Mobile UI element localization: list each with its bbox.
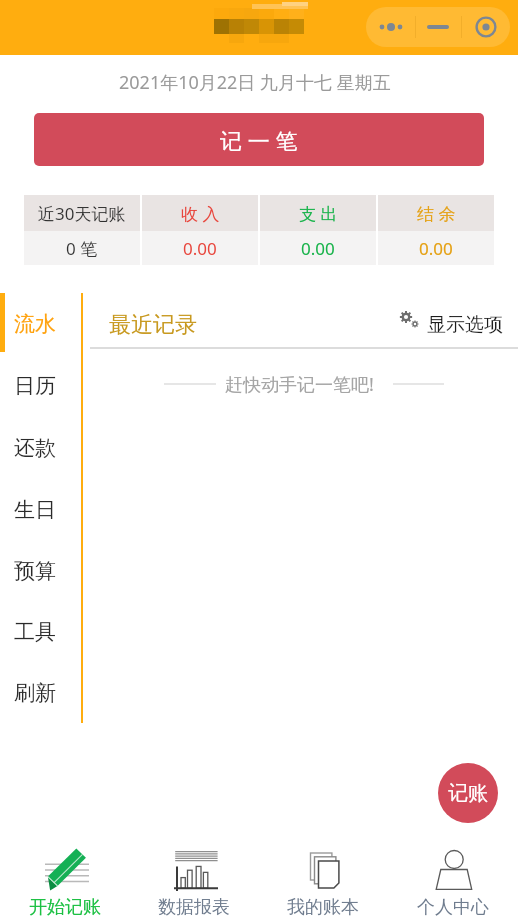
staticText: 生日 xyxy=(14,497,56,523)
button[interactable]: More xyxy=(366,7,415,47)
staticText: 0.00 xyxy=(301,237,335,260)
staticText: 流水 xyxy=(14,311,56,337)
button[interactable]: 我的账本 xyxy=(258,842,388,920)
staticText: 记账 xyxy=(448,781,488,806)
button[interactable]: 工具 xyxy=(0,601,83,662)
staticText: 工具 xyxy=(14,619,56,645)
staticText: 日历 xyxy=(14,373,56,399)
staticText: 0 笔 xyxy=(66,237,98,260)
staticText: 记 一 笔 xyxy=(220,125,298,155)
button[interactable]: 数据报表 xyxy=(129,842,258,920)
button[interactable]: 记账 xyxy=(438,763,498,823)
staticText: 预算 xyxy=(14,558,56,584)
staticText: 收 入 xyxy=(181,202,220,225)
button[interactable]: 预算 xyxy=(0,540,83,601)
button[interactable]: Minimize xyxy=(415,7,461,47)
staticText: 个人中心 xyxy=(417,896,489,919)
staticText: 刷新 xyxy=(14,680,56,706)
button[interactable]: 刷新 xyxy=(0,662,83,723)
staticText: 我的账本 xyxy=(287,896,359,919)
staticText: 数据报表 xyxy=(158,896,230,919)
staticText: 0.00 xyxy=(419,237,453,260)
staticText: 还款 xyxy=(14,435,56,461)
staticText: 0.00 xyxy=(183,237,217,260)
button[interactable]: 日历 xyxy=(0,355,83,417)
staticText: 2021年10月22日 九月十七 星期五 xyxy=(119,70,391,95)
staticText: 近30天记账 xyxy=(38,202,126,225)
staticText: 支 出 xyxy=(299,202,338,225)
staticText: 显示选项 xyxy=(427,313,503,337)
button[interactable]: 生日 xyxy=(0,479,83,540)
staticText: 赶快动手记一笔吧! xyxy=(225,372,374,397)
button[interactable]: 开始记账 xyxy=(0,842,129,920)
staticText: 开始记账 xyxy=(29,896,101,919)
button[interactable]: 还款 xyxy=(0,417,83,479)
button[interactable]: Close xyxy=(461,7,510,47)
staticText: 结 余 xyxy=(417,202,456,225)
button[interactable]: 记 一 笔 xyxy=(34,113,484,166)
button[interactable]: 流水 xyxy=(0,293,83,355)
staticText: 最近记录 xyxy=(109,311,197,339)
button[interactable]: 个人中心 xyxy=(388,842,518,920)
button[interactable]: 显示选项 xyxy=(397,311,503,335)
